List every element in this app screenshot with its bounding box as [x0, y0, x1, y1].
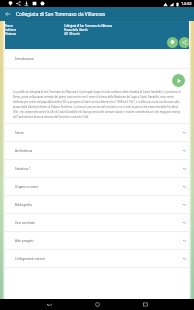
staticText: La pontificia collegiata di San Tommaso … [13, 90, 182, 118]
staticText: Nome: Indirizzo: Distanza: [5, 24, 17, 36]
button[interactable]: Organo a canne [4, 178, 190, 195]
button[interactable]: Home [84, 299, 110, 310]
staticText: Altri progetti [15, 239, 34, 243]
staticText: Architettura [15, 149, 33, 153]
button[interactable]: Collegamenti esterni [4, 250, 190, 267]
button[interactable]: Share [179, 37, 190, 48]
button[interactable]: Struttura 1 [4, 160, 190, 177]
staticText: Bibliografia [15, 203, 32, 207]
button[interactable]: Architettura [4, 142, 190, 159]
staticText: Collegiata di San Tommaso da Villanova [16, 11, 106, 18]
button[interactable]: Back [36, 299, 62, 310]
staticText: 14:02 [181, 1, 192, 7]
staticText: Introduzione [15, 57, 34, 61]
button[interactable]: Recent apps [132, 299, 158, 310]
staticText: Collegamenti esterni [15, 257, 46, 261]
button[interactable]: Bibliografia [4, 196, 190, 213]
staticText: Voci correlate [15, 221, 35, 225]
button[interactable]: Show on map [167, 37, 178, 48]
button[interactable]: Storia [4, 124, 190, 141]
staticText: Struttura 1 [15, 167, 31, 171]
button[interactable]: Play audio [172, 74, 185, 87]
button[interactable]: Altri progetti [4, 232, 190, 249]
staticText: Organo a canne [15, 185, 39, 189]
button[interactable]: Voci correlate [4, 214, 190, 231]
staticText: Storia [15, 131, 24, 135]
button[interactable]: Back [0, 7, 16, 21]
staticText: Collegiata di San Tommaso da Villanova P… [64, 24, 113, 36]
